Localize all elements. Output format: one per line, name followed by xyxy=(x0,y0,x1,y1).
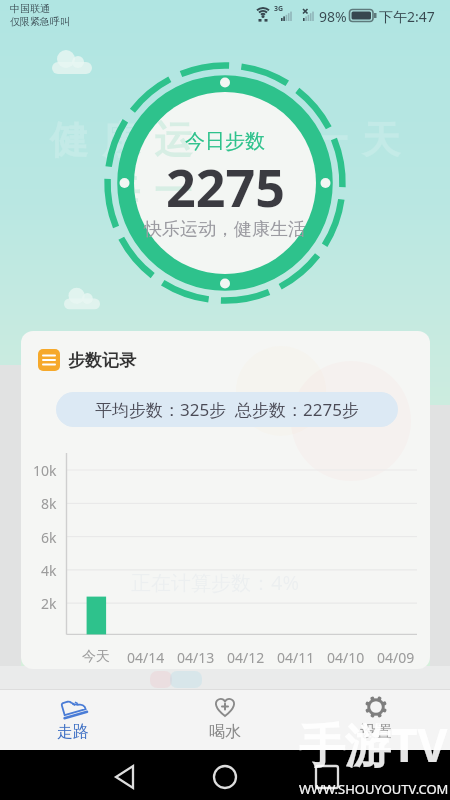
staticText: 走路 xyxy=(57,722,89,742)
staticText: 正在计算步数：4% xyxy=(131,569,300,596)
staticText: 今天 xyxy=(82,648,110,666)
staticText: 98% xyxy=(319,7,347,26)
staticText: 健康运动每一天 xyxy=(134,116,232,267)
button[interactable]: 设置 xyxy=(346,695,406,747)
staticText: 平均步数：325步 总步数：2275步 xyxy=(95,398,359,421)
staticText: 10k xyxy=(33,461,57,480)
staticText: 4k xyxy=(41,561,57,580)
button[interactable]: 走路 xyxy=(43,695,103,747)
staticText: 04/10 xyxy=(327,648,365,667)
staticText: 04/13 xyxy=(177,648,215,667)
staticText: 下午2:47 xyxy=(379,7,435,26)
staticText: 2275 xyxy=(166,151,285,222)
staticText: 04/14 xyxy=(127,648,165,667)
staticText: 6k xyxy=(41,528,57,547)
staticText: 快乐运动，健康生活 xyxy=(144,218,306,241)
staticText: WWW.SHOUYOUTV.COM xyxy=(299,780,449,798)
staticText: 步数记录 xyxy=(68,350,136,371)
staticText: 今日步数 xyxy=(185,129,265,154)
staticText: 中国联通 xyxy=(10,2,50,15)
staticText: 04/11 xyxy=(277,648,315,667)
staticText: 手游TV xyxy=(299,713,448,776)
staticText: 3G xyxy=(274,4,284,14)
button[interactable]: 喝水 xyxy=(195,695,255,747)
staticText: 04/12 xyxy=(227,648,265,667)
staticText: 健康运动每一天 xyxy=(43,116,407,164)
staticText: 喝水 xyxy=(209,722,241,742)
staticText: 2k xyxy=(41,594,57,613)
staticText: 设置 xyxy=(360,722,392,742)
staticText: 04/09 xyxy=(377,648,415,667)
staticText: 8k xyxy=(41,494,57,513)
staticText: 仅限紧急呼叫 xyxy=(10,15,70,28)
